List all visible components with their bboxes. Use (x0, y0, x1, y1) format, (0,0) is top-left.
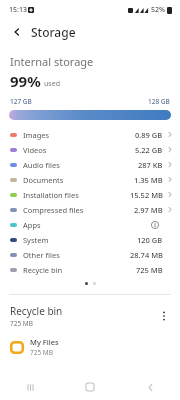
staticText: Videos (23, 145, 47, 155)
staticText: used (44, 79, 60, 89)
button[interactable]: System (0, 232, 180, 247)
staticText: 725 MB (136, 265, 163, 275)
staticText: 52% (151, 5, 165, 15)
staticText: Compressed files (23, 205, 84, 215)
staticText: Audio files (23, 160, 60, 170)
staticText: 120 GB (137, 235, 163, 245)
button[interactable]: Audio files (0, 157, 180, 172)
staticText: 28.74 MB (130, 250, 163, 260)
staticText: Recycle bin (23, 265, 63, 275)
button[interactable]: Recycle bin (0, 262, 180, 277)
staticText: 725 MB (30, 348, 53, 357)
staticText: 1.35 MB (134, 175, 163, 185)
button[interactable]: Other files (0, 247, 180, 262)
button[interactable]: Back (120, 374, 180, 400)
staticText: 127 GB (10, 97, 32, 106)
staticText: 2.97 MB (134, 205, 163, 215)
staticText: Recycle bin (10, 304, 63, 318)
staticText: Installation files (23, 190, 79, 200)
staticText: 15:13 (9, 5, 27, 15)
staticText: Internal storage (10, 54, 94, 69)
staticText: 287 KB (138, 160, 163, 170)
button[interactable]: Apps (0, 217, 180, 232)
button[interactable]: Installation files (0, 187, 180, 202)
staticText: System (23, 235, 49, 245)
button[interactable]: Compressed files (0, 202, 180, 217)
staticText: Other files (23, 250, 60, 260)
button[interactable]: Home (60, 374, 120, 400)
staticText: Storage (31, 24, 76, 40)
staticText: 99% (10, 71, 41, 91)
staticText: My Files (30, 337, 59, 347)
staticText: 128 GB (148, 97, 170, 106)
staticText: 5.22 GB (135, 145, 163, 155)
staticText: 0.89 GB (135, 130, 163, 140)
button[interactable]: Recents (0, 374, 60, 400)
staticText: 15.52 MB (130, 190, 163, 200)
button[interactable]: My Files (0, 337, 180, 357)
staticText: 725 MB (10, 319, 33, 328)
button[interactable]: Recycle bin (0, 304, 180, 328)
button[interactable]: Documents (0, 172, 180, 187)
staticText: Images (23, 130, 50, 140)
staticText: Documents (23, 175, 64, 185)
button[interactable]: More options (156, 308, 172, 324)
button[interactable]: Back (8, 23, 26, 41)
staticText: Apps (23, 220, 41, 230)
button[interactable]: Images (0, 127, 180, 142)
button[interactable]: Videos (0, 142, 180, 157)
